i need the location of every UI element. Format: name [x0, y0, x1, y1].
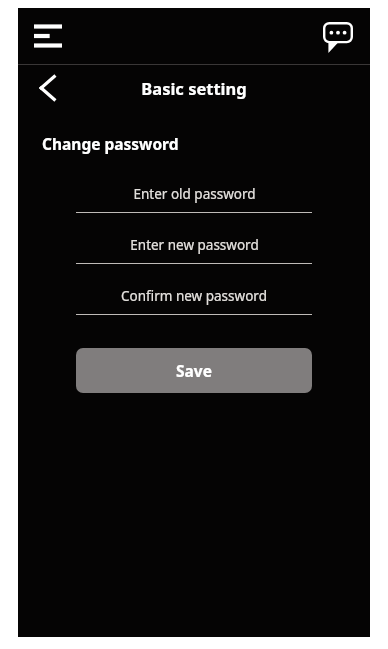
button[interactable]: Enter new password [76, 227, 312, 264]
button[interactable]: Enter old password [76, 176, 312, 213]
button[interactable]: Messages [316, 14, 360, 58]
staticText: Enter old password [133, 185, 256, 203]
button[interactable]: Save [76, 348, 312, 393]
staticText: Save [176, 360, 212, 381]
staticText: Change password [42, 133, 179, 154]
staticText: Basic setting [141, 77, 247, 99]
staticText: Confirm new password [121, 287, 267, 305]
button[interactable]: Back [26, 67, 68, 109]
staticText: Enter new password [130, 236, 259, 254]
button[interactable]: Menu [26, 14, 70, 58]
button[interactable]: Confirm new password [76, 278, 312, 315]
